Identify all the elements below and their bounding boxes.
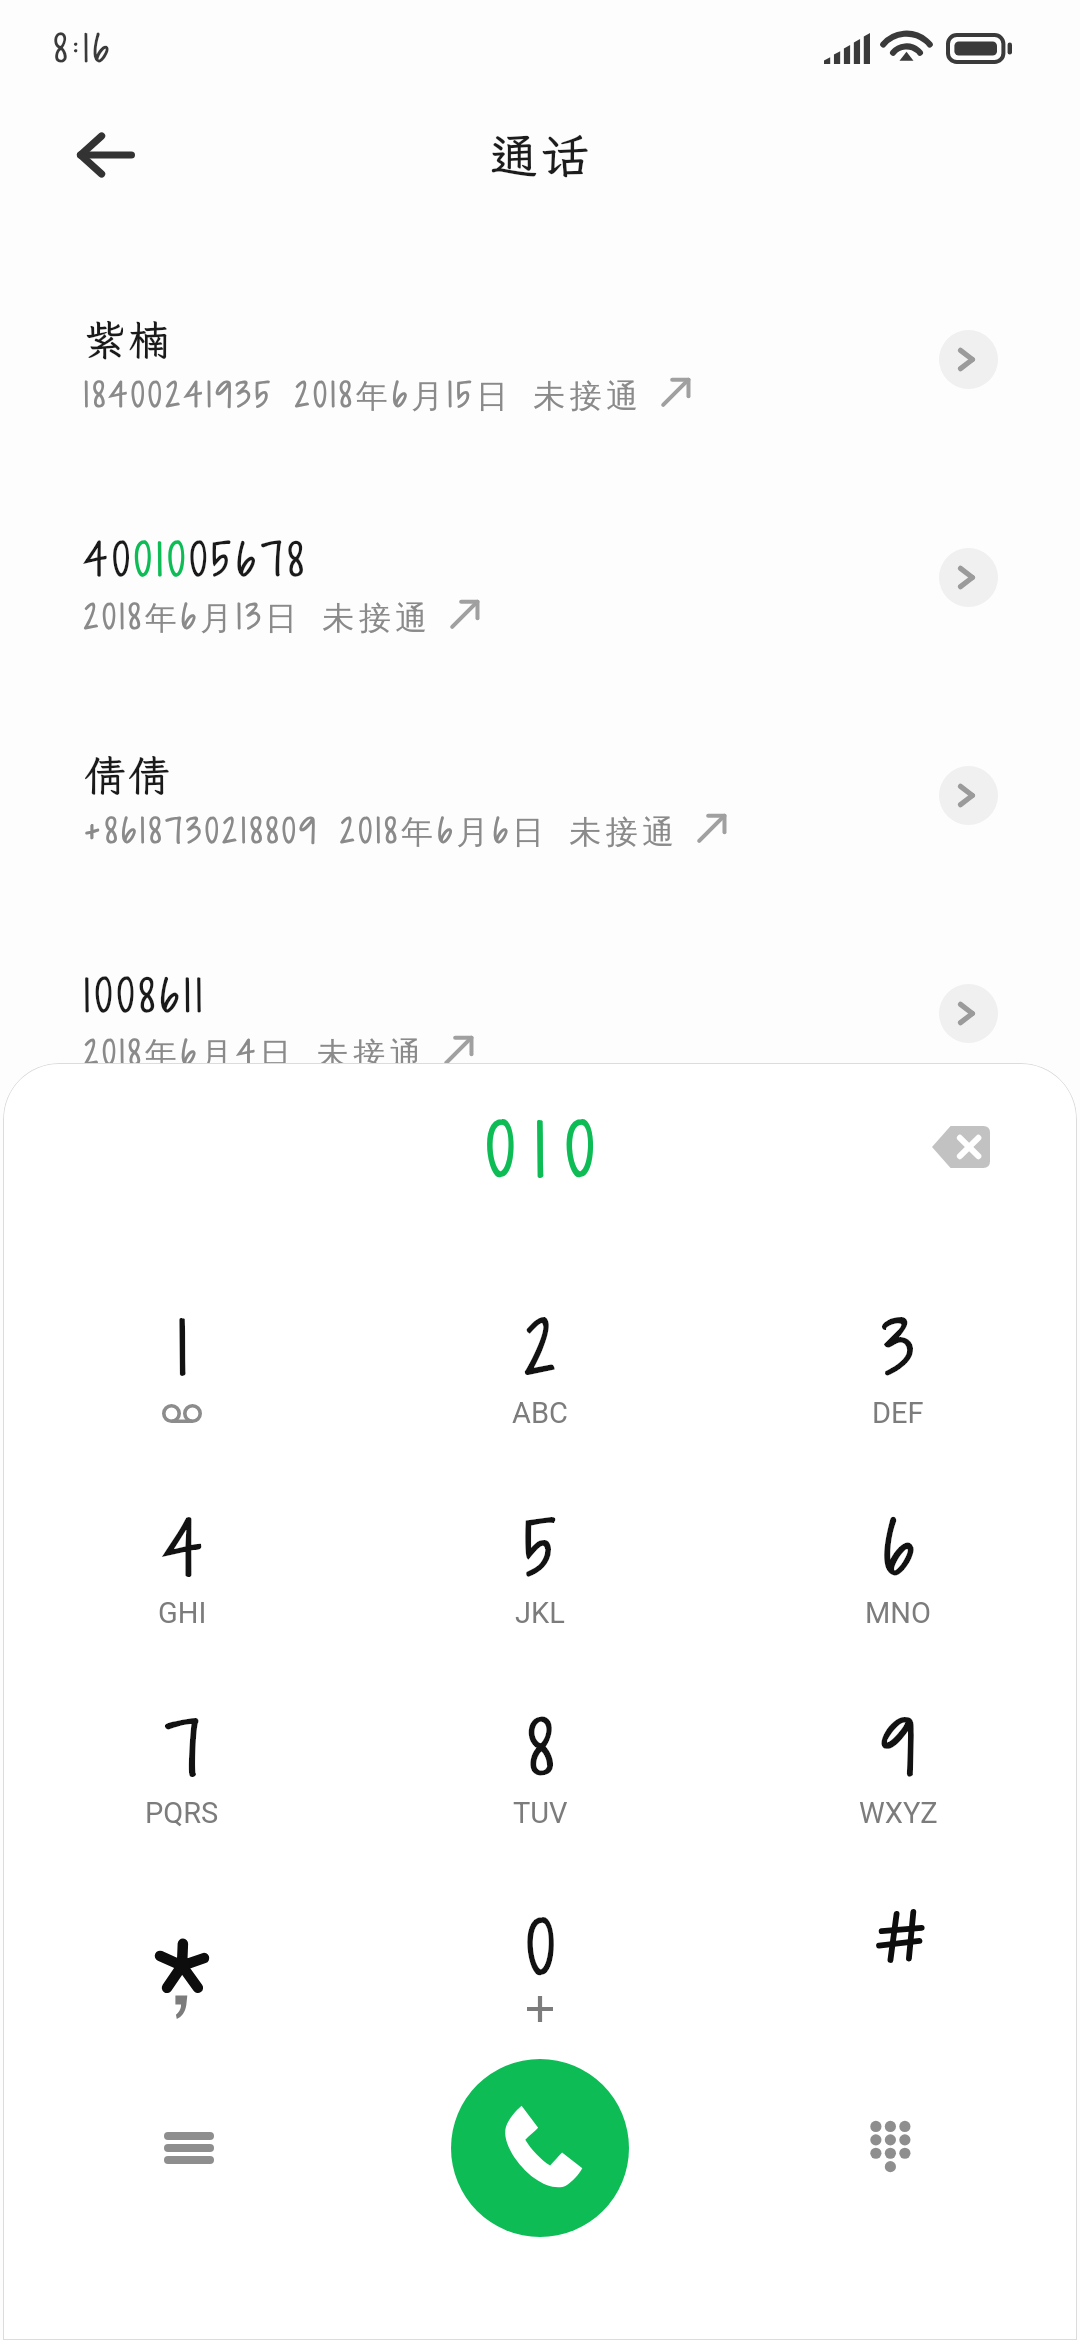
button[interactable]: Menu xyxy=(144,2103,234,2193)
staticText: 0 xyxy=(527,1899,554,1998)
staticText: 2018年6月13日 未接通 xyxy=(84,593,433,639)
button[interactable]: Call details xyxy=(939,766,998,825)
button[interactable]: 1008611 xyxy=(0,966,1080,1126)
staticText: 紫楠 xyxy=(84,312,173,367)
staticText: WXYZ xyxy=(859,1796,938,1830)
button[interactable]: 4 xyxy=(3,1463,361,1663)
button[interactable]: 1 xyxy=(3,1263,361,1463)
button[interactable]: Delete xyxy=(918,1109,1004,1185)
button[interactable]: Call details xyxy=(939,548,998,607)
button[interactable]: 4001005678 xyxy=(0,530,1080,690)
staticText: +8618730218809 2018年6月6日 未接通 xyxy=(84,807,680,853)
staticText: 倩倩 xyxy=(84,748,173,803)
button[interactable]: 9 xyxy=(719,1663,1077,1863)
staticText: DEF xyxy=(872,1396,924,1430)
staticText: GHI xyxy=(158,1596,207,1630)
button[interactable]: 7 xyxy=(3,1663,361,1863)
button[interactable] xyxy=(719,1863,1077,2063)
staticText: 4 xyxy=(163,1499,202,1598)
staticText: 8 xyxy=(528,1699,553,1798)
staticText: 010 xyxy=(487,1101,615,1200)
button[interactable]: 倩倩 xyxy=(0,748,1080,908)
staticText: 2 xyxy=(525,1299,555,1398)
button[interactable]: Call details xyxy=(939,330,998,389)
staticText: 5 xyxy=(524,1499,556,1598)
button[interactable]: 6 xyxy=(719,1463,1077,1663)
button[interactable]: Back xyxy=(60,121,152,189)
staticText: 8:16 xyxy=(54,23,114,74)
button[interactable]: 8 xyxy=(361,1663,719,1863)
staticText: 1 xyxy=(177,1299,187,1398)
staticText: 7 xyxy=(165,1699,200,1798)
staticText: 1008611 xyxy=(84,966,208,1025)
staticText: PQRS xyxy=(145,1796,219,1830)
staticText: JKL xyxy=(515,1596,565,1630)
button[interactable]: 2 xyxy=(361,1263,719,1463)
button[interactable] xyxy=(3,1863,361,2063)
button[interactable]: 0 xyxy=(361,1863,719,2063)
button[interactable]: 5 xyxy=(361,1463,719,1663)
staticText: 4001005678 xyxy=(84,530,309,589)
staticText: MNO xyxy=(865,1596,931,1630)
button[interactable]: 紫楠 xyxy=(0,312,1080,472)
button[interactable]: Dialpad xyxy=(846,2103,936,2193)
button[interactable]: 3 xyxy=(719,1263,1077,1463)
staticText: 18400241935 2018年6月15日 未接通 xyxy=(84,371,644,417)
button[interactable]: Call xyxy=(451,2059,629,2237)
staticText: ABC xyxy=(512,1396,568,1430)
staticText: 通话 xyxy=(490,123,591,186)
staticText: 6 xyxy=(883,1499,914,1598)
staticText: 9 xyxy=(881,1699,915,1798)
staticText: 3 xyxy=(882,1299,914,1398)
button[interactable]: Call details xyxy=(939,984,998,1043)
staticText: TUV xyxy=(513,1796,568,1830)
staticText: 2018年6月4日 未接通 xyxy=(84,1029,427,1075)
